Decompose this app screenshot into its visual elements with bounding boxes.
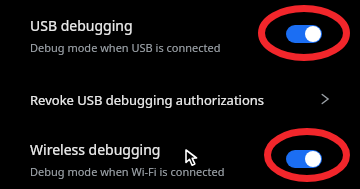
staticText: USB debugging <box>30 16 133 35</box>
button[interactable]: Revoke USB debugging authorizations <box>0 72 360 124</box>
staticText: Revoke USB debugging authorizations <box>30 91 265 109</box>
button[interactable]: Toggle <box>286 150 322 168</box>
staticText: Debug mode when Wi-Fi is connected <box>30 164 225 179</box>
button[interactable]: USB debugging <box>0 0 360 66</box>
staticText: Wireless debugging <box>30 140 161 159</box>
button[interactable]: Toggle <box>286 25 322 43</box>
button[interactable]: Wireless debugging <box>0 128 360 189</box>
other: Open <box>318 92 332 106</box>
staticText: Debug mode when USB is connected <box>30 40 221 55</box>
